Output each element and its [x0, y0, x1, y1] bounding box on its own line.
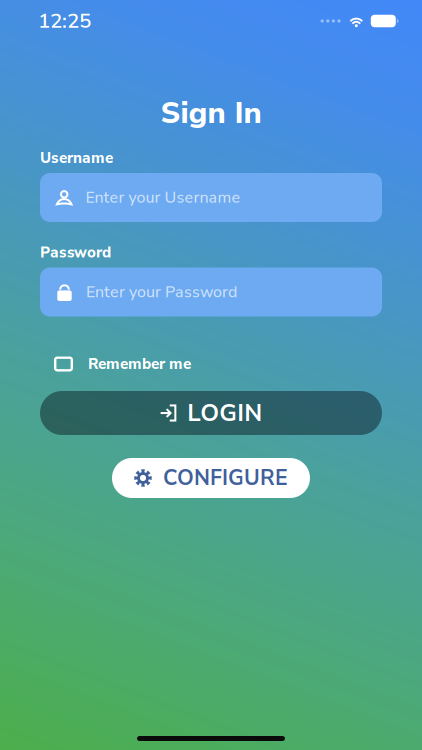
button[interactable]: LOGIN [40, 391, 382, 435]
staticText: 12:25 [38, 7, 91, 35]
button[interactable]: CONFIGURE [112, 458, 310, 498]
button[interactable]: Remember me [0, 354, 422, 374]
staticText: LOGIN [187, 397, 262, 429]
staticText: Password [40, 242, 111, 263]
staticText: Enter your Password [86, 281, 237, 303]
staticText: Sign In [160, 92, 261, 134]
staticText: Remember me [88, 354, 191, 374]
staticText: Enter your Username [85, 187, 240, 208]
staticText: Username [40, 148, 113, 168]
staticText: CONFIGURE [163, 463, 288, 493]
